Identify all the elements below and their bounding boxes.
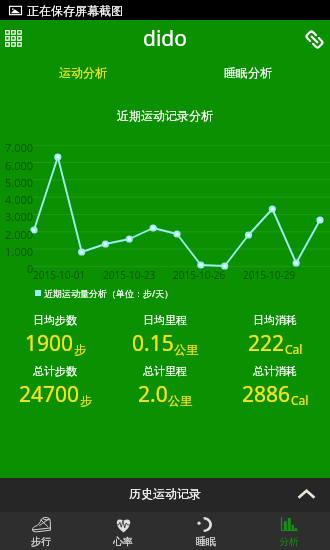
staticText: 1900 — [25, 329, 74, 358]
staticText: 步 — [80, 393, 92, 408]
staticText: 睡眠分析 — [224, 65, 272, 80]
staticText: 1.000 — [5, 244, 34, 257]
staticText: 5.000 — [5, 175, 34, 188]
staticText: 心率 — [113, 535, 133, 548]
staticText: 步行 — [31, 535, 51, 548]
staticText: 24700 — [19, 380, 80, 409]
staticText: 0 — [27, 261, 34, 274]
staticText: 2.000 — [5, 227, 34, 240]
staticText: 近期运动量分析（单位：步/天） — [44, 287, 174, 299]
staticText: Cal — [291, 392, 309, 408]
staticText: 2015-10-23 — [103, 268, 156, 280]
button[interactable]: Apps — [0, 25, 28, 53]
button[interactable]: Link device — [299, 24, 329, 54]
staticText: 步 — [74, 342, 86, 357]
staticText: 7.000 — [5, 140, 34, 153]
button[interactable]: 历史运动记录 — [0, 478, 330, 512]
staticText: 0.15 — [132, 329, 174, 358]
button[interactable]: 睡眠分析 — [165, 58, 330, 86]
staticText: 2015-10-29 — [243, 268, 296, 280]
staticText: dido — [143, 24, 187, 53]
staticText: 总计步数 — [33, 364, 77, 378]
staticText: 2015-10-26 — [173, 268, 226, 280]
staticText: 2.0 — [138, 380, 168, 409]
staticText: 4.000 — [5, 192, 34, 205]
staticText: 总计消耗 — [253, 364, 297, 378]
staticText: 总计里程 — [143, 364, 187, 378]
button[interactable]: 运动分析 — [0, 58, 165, 86]
button[interactable]: 步行 — [0, 512, 82, 550]
staticText: 3.000 — [5, 209, 34, 222]
staticText: 公里 — [168, 393, 192, 408]
staticText: 日均里程 — [143, 313, 187, 327]
staticText: 正在保存屏幕截图 — [27, 3, 123, 18]
staticText: 2886 — [242, 380, 291, 409]
staticText: 睡眠 — [196, 535, 216, 548]
staticText: 分析 — [279, 535, 299, 548]
staticText: 2015-10-01 — [33, 268, 86, 280]
staticText: 日均消耗 — [253, 313, 297, 327]
button[interactable]: 分析 — [247, 512, 330, 550]
staticText: 运动分析 — [59, 65, 107, 80]
staticText: 历史运动记录 — [129, 486, 201, 501]
button[interactable]: 心率 — [82, 512, 164, 550]
staticText: 6.000 — [5, 158, 34, 171]
staticText: 近期运动记录分析 — [0, 108, 330, 123]
staticText: 日均步数 — [33, 313, 77, 327]
staticText: 公里 — [174, 342, 198, 357]
staticText: Cal — [285, 341, 303, 357]
button[interactable]: 睡眠 — [164, 512, 247, 550]
staticText: 222 — [248, 329, 285, 358]
